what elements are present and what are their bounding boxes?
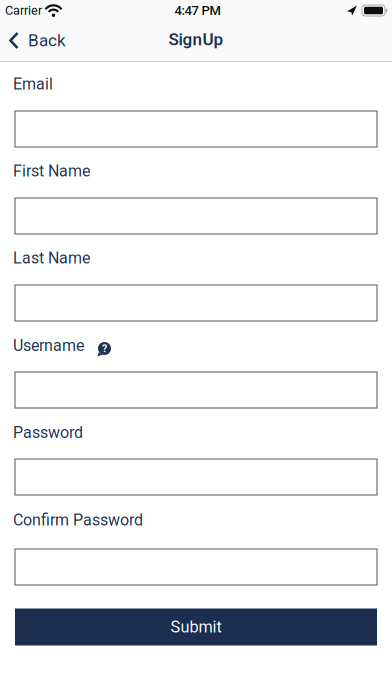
button[interactable]: Password text field [15,459,377,495]
staticText: SignUp [168,29,223,49]
button[interactable]: Back [9,30,66,50]
button[interactable]: Confirm Password text field [15,549,377,585]
staticText: Email [13,75,53,93]
button[interactable]: Submit [15,608,377,645]
button[interactable]: Username help [97,340,112,356]
staticText: First Name [13,162,90,180]
button[interactable]: Email text field [15,111,377,147]
button[interactable]: First Name text field [15,198,377,234]
staticText: Carrier [5,3,42,18]
staticText: 4:47 PM [174,3,220,18]
staticText: Last Name [13,249,90,267]
button[interactable]: Last Name text field [15,285,377,321]
staticText: ? [102,342,107,355]
staticText: Username [13,336,84,355]
staticText: Submit [170,617,221,637]
staticText: Confirm Password [13,511,143,529]
staticText: Back [28,30,66,50]
staticText: Password [13,423,83,442]
button[interactable]: Username text field [15,372,377,408]
